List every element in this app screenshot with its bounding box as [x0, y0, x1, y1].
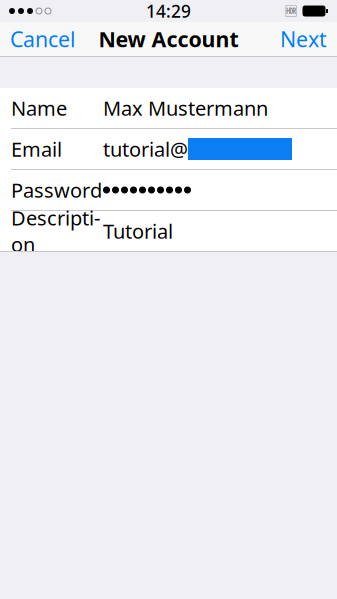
staticText: Cancel [10, 25, 76, 53]
staticText: 14:29 [146, 0, 191, 22]
button[interactable]: Cancel [0, 22, 86, 56]
staticText: Max Mustermann [103, 95, 268, 121]
staticText: 🆧 [285, 4, 297, 18]
button[interactable]: Email [0, 129, 337, 169]
staticText: Description [11, 204, 100, 257]
staticText: New Account [98, 25, 238, 53]
button[interactable]: Password [0, 170, 337, 210]
staticText: Name [11, 95, 67, 121]
staticText: tutorial@ [103, 136, 188, 162]
staticText: Tutorial [103, 218, 173, 244]
button[interactable]: Next [270, 22, 337, 56]
staticText: Email [11, 136, 62, 162]
button[interactable]: Description [0, 211, 337, 251]
staticText: Password [11, 177, 102, 203]
button[interactable]: Name [0, 88, 337, 128]
staticText: Next [280, 25, 327, 53]
